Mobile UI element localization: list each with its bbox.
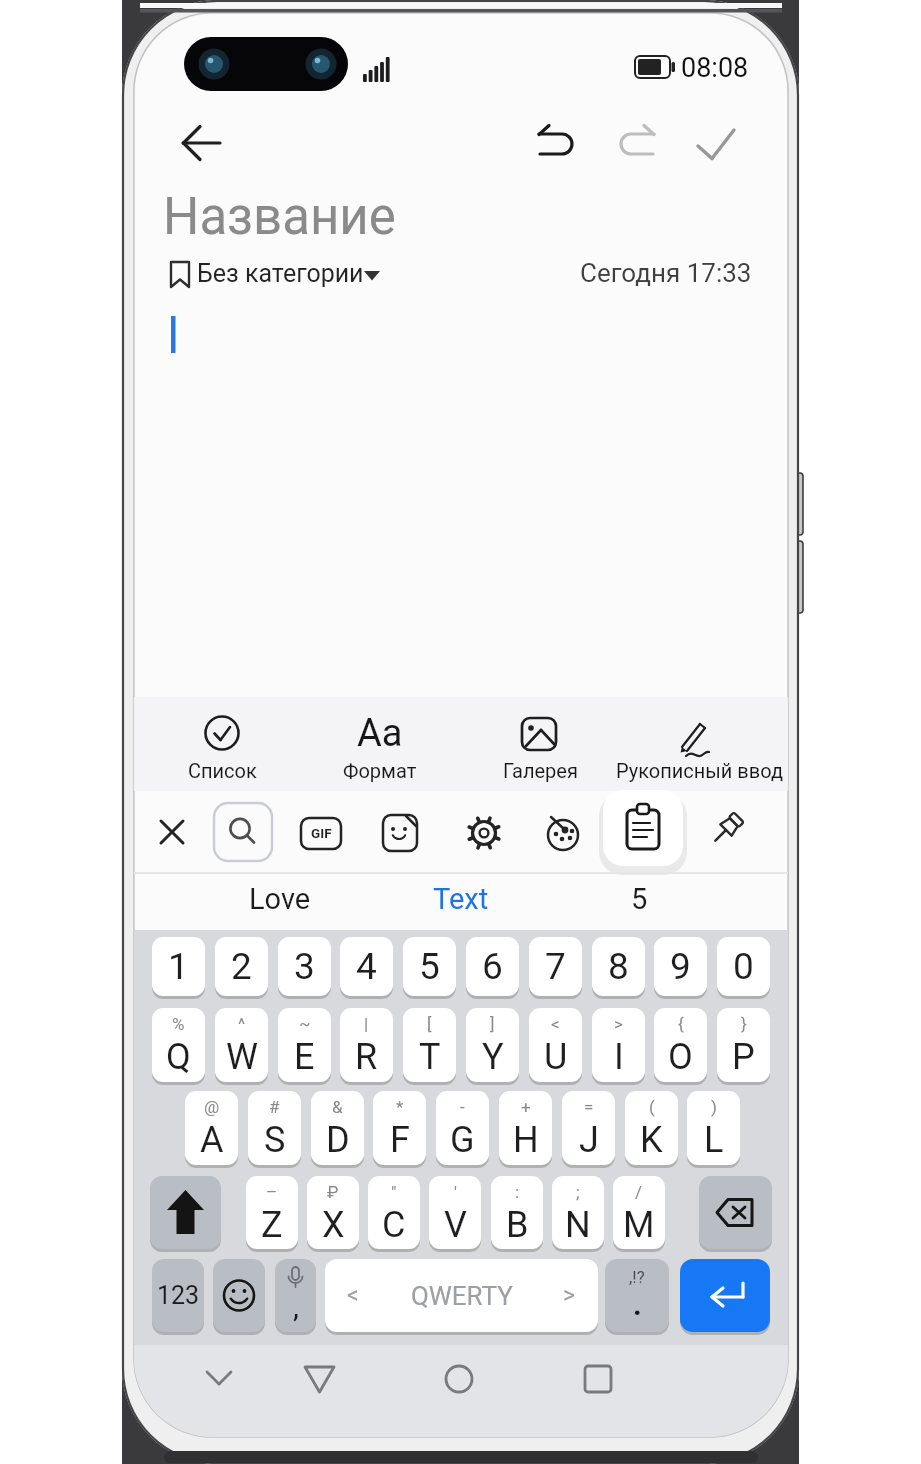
button[interactable]: { [654, 1008, 707, 1082]
button[interactable] [160, 698, 284, 790]
staticText: ₽ [327, 1182, 339, 1202]
button[interactable] [318, 698, 442, 790]
button[interactable]: % [152, 1008, 205, 1082]
staticText: < [551, 1014, 560, 1034]
button[interactable] [699, 1176, 772, 1249]
button[interactable] [435, 1356, 483, 1400]
staticText: N [565, 1204, 591, 1246]
button[interactable]: Text [331, 876, 591, 922]
staticText: Формат [343, 759, 417, 782]
button[interactable] [373, 806, 425, 858]
button[interactable]: QWERTY [325, 1259, 598, 1332]
button[interactable]: } [717, 1008, 770, 1082]
staticText: 0 [733, 945, 754, 988]
button[interactable] [478, 698, 602, 790]
button[interactable]: ,!? [605, 1259, 669, 1332]
button[interactable]: & [311, 1091, 364, 1165]
button[interactable]: 7 [529, 937, 582, 996]
button[interactable]: - [436, 1091, 489, 1165]
staticText: , [293, 1289, 299, 1324]
button[interactable]: / [613, 1176, 665, 1249]
button[interactable]: ; [552, 1176, 604, 1249]
button[interactable] [195, 1356, 243, 1400]
button[interactable] [146, 806, 198, 858]
staticText: Рукописный ввод [616, 759, 784, 782]
button[interactable] [150, 1176, 221, 1249]
staticText: < [347, 1282, 359, 1309]
button[interactable]: – [246, 1176, 298, 1249]
staticText: I [614, 1036, 624, 1078]
staticText: ( [649, 1097, 655, 1117]
staticText: QWERTY [411, 1281, 513, 1311]
staticText: 9 [670, 945, 691, 988]
staticText: B [506, 1204, 529, 1246]
staticText: Text [433, 882, 489, 916]
button[interactable]: > [592, 1008, 645, 1082]
button[interactable]: 5 [509, 876, 769, 922]
staticText: % [172, 1014, 185, 1034]
button[interactable] [680, 1259, 770, 1332]
button[interactable]: 1 [152, 937, 205, 996]
button[interactable] [295, 1356, 343, 1400]
staticText: } [741, 1014, 747, 1034]
button[interactable]: ] [466, 1008, 519, 1082]
button[interactable]: : [491, 1176, 543, 1249]
button[interactable] [638, 698, 762, 790]
staticText: L [704, 1119, 724, 1161]
button[interactable]: 6 [466, 937, 519, 996]
button[interactable]: 123 [152, 1259, 204, 1332]
button[interactable] [165, 255, 377, 293]
button[interactable]: ~ [278, 1008, 331, 1082]
button[interactable] [573, 1356, 621, 1400]
staticText: E [294, 1036, 315, 1078]
staticText: Aa [357, 711, 403, 756]
button[interactable]: 2 [215, 937, 268, 996]
staticText: 1 [168, 945, 189, 988]
button[interactable]: 5 [403, 937, 456, 996]
staticText: # [269, 1097, 280, 1117]
button[interactable]: " [368, 1176, 420, 1249]
staticText: W [226, 1036, 258, 1078]
button[interactable]: * [373, 1091, 426, 1165]
button[interactable]: ) [687, 1091, 740, 1165]
staticText: ) [711, 1097, 717, 1117]
button[interactable]: 9 [654, 937, 707, 996]
button[interactable]: 3 [278, 937, 331, 996]
staticText: 8 [608, 945, 629, 988]
staticText: G [450, 1119, 475, 1161]
staticText: F [390, 1119, 410, 1161]
button[interactable] [295, 806, 347, 858]
staticText: * [396, 1097, 404, 1117]
button[interactable]: ' [429, 1176, 481, 1249]
button[interactable]: Love [150, 876, 410, 922]
staticText: Список [188, 759, 257, 782]
button[interactable] [691, 120, 739, 164]
button[interactable] [700, 806, 752, 858]
button[interactable]: , [275, 1259, 316, 1332]
staticText: T [419, 1036, 441, 1078]
button[interactable]: ^ [215, 1008, 268, 1082]
button[interactable] [540, 806, 592, 858]
button[interactable]: 4 [340, 937, 393, 996]
staticText: > [614, 1014, 623, 1034]
button[interactable]: 0 [717, 937, 770, 996]
button[interactable]: | [340, 1008, 393, 1082]
button[interactable]: < [529, 1008, 582, 1082]
button[interactable]: + [499, 1091, 552, 1165]
button[interactable] [213, 1259, 265, 1332]
button[interactable]: = [562, 1091, 615, 1165]
button[interactable] [529, 120, 577, 164]
button[interactable] [175, 119, 227, 167]
button[interactable]: [ [403, 1008, 456, 1082]
staticText: : [515, 1182, 520, 1202]
button[interactable]: # [248, 1091, 301, 1165]
button[interactable]: 8 [592, 937, 645, 996]
staticText: Галерея [503, 759, 578, 782]
button[interactable] [214, 803, 272, 861]
button[interactable] [613, 120, 661, 164]
button[interactable] [458, 806, 510, 858]
button[interactable]: ( [625, 1091, 678, 1165]
button[interactable]: ₽ [307, 1176, 359, 1249]
button[interactable]: @ [185, 1091, 238, 1165]
button[interactable] [603, 790, 683, 866]
